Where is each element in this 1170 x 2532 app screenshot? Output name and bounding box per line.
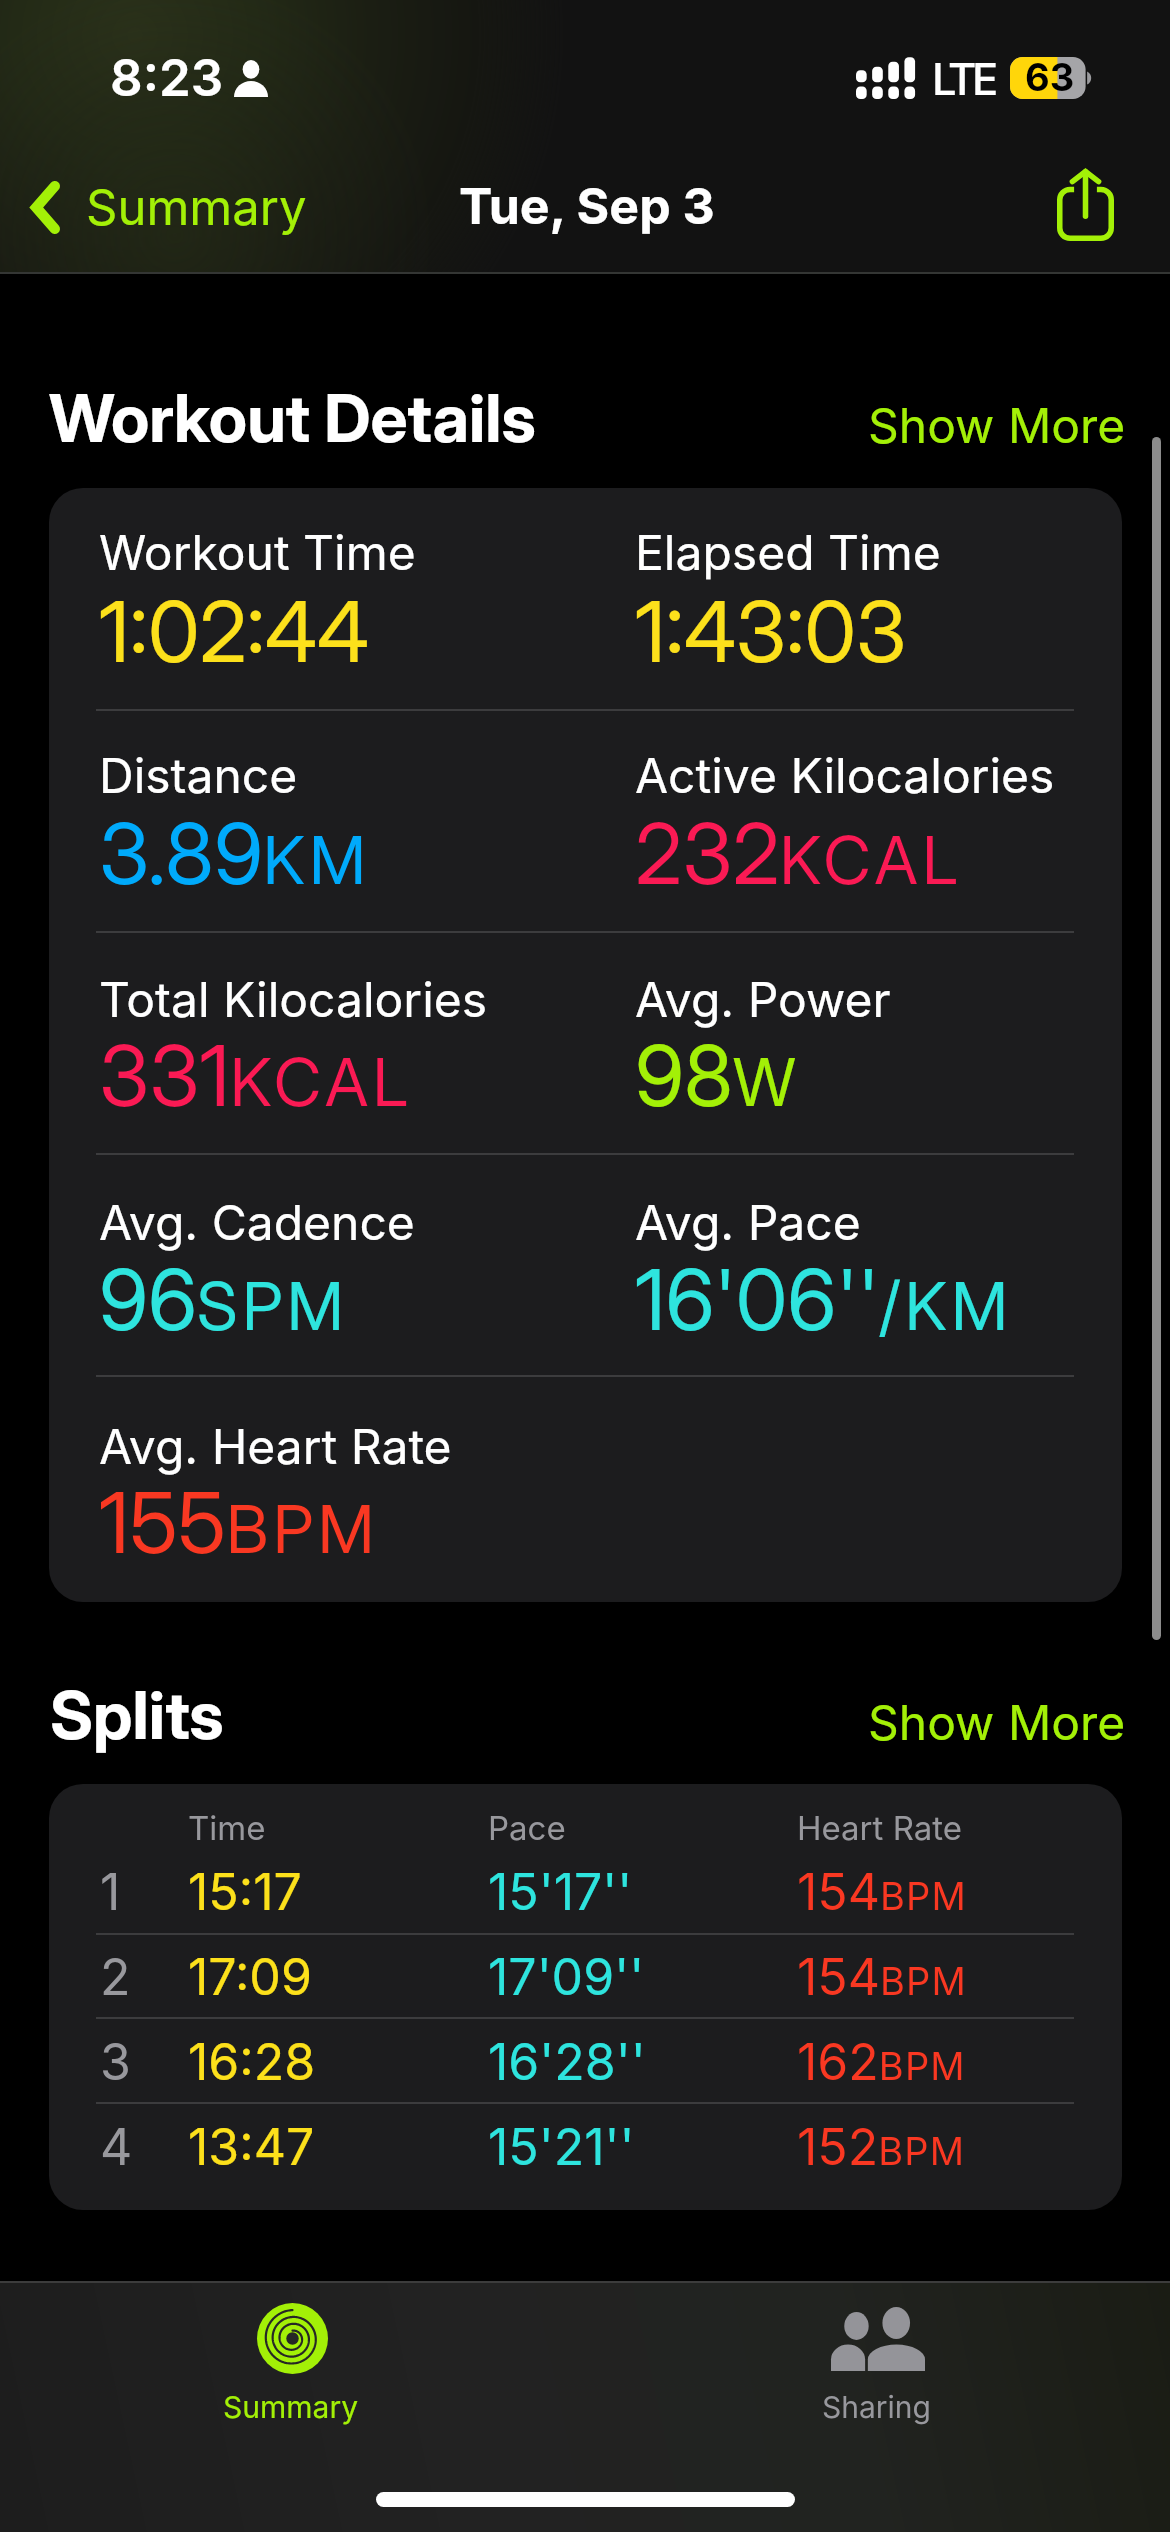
staticText: 17:09 [188,1947,312,2007]
staticText: 15'17'' [488,1862,633,1922]
staticText: 2 [100,1947,131,2007]
staticText: 154BPM [797,1862,968,1922]
staticText: 16'28'' [488,2032,646,2092]
staticText: 232KCAL [635,803,962,905]
staticText: Avg. Heart Rate [99,1417,452,1475]
staticText: Avg. Cadence [99,1193,415,1251]
staticText: 15:17 [188,1862,302,1922]
staticText: 16'06''/KM [635,1249,1013,1351]
staticText: 3 [100,2032,131,2092]
staticText: Workout Time [99,523,416,581]
staticText: Show More [868,1693,1126,1751]
staticText: Avg. Pace [635,1193,861,1251]
staticText: LTE [932,53,994,106]
button[interactable] [49,2019,1122,2104]
staticText: Total Kilocalories [99,970,488,1028]
staticText: 4 [100,2117,133,2177]
staticText: 1:43:03 [635,581,907,683]
staticText: Pace [488,1808,566,1848]
staticText: 155BPM [99,1472,379,1574]
staticText: Elapsed Time [635,523,941,581]
staticText: 17'09'' [488,1947,645,2007]
staticText: 1 [100,1862,121,1922]
staticText: Workout Details [49,378,536,458]
button[interactable]: Summary [10,166,325,249]
button[interactable] [49,1934,1122,2019]
staticText: 152BPM [797,2117,966,2177]
staticText: Time [188,1808,266,1848]
staticText: 154BPM [797,1947,968,2007]
staticText: 15'21'' [488,2117,635,2177]
staticText: 63 [1025,54,1075,96]
staticText: Summary [86,178,307,237]
staticText: Heart Rate [797,1808,962,1848]
staticText: Tue, Sep 3 [459,176,715,236]
staticText: Active Kilocalories [635,746,1055,804]
staticText: Show More [868,396,1126,454]
staticText: Splits [50,1675,224,1755]
staticText: 16:28 [188,2032,316,2092]
staticText: Avg. Power [635,970,891,1028]
button[interactable] [0,2281,585,2449]
button[interactable]: Show More [848,1673,1146,1771]
staticText: 162BPM [797,2032,966,2092]
button[interactable] [49,1849,1122,1934]
button[interactable] [585,2281,1170,2449]
button[interactable]: Show More [848,376,1146,474]
staticText: Sharing [822,2389,931,2425]
staticText: Summary [223,2389,359,2425]
staticText: 331KCAL [99,1025,413,1127]
button[interactable] [49,2104,1122,2189]
button[interactable]: Share [1037,149,1134,261]
staticText: 8:23 [110,47,224,109]
staticText: 13:47 [188,2117,315,2177]
staticText: 96SPM [99,1249,349,1351]
staticText: 3.89KM [99,803,371,905]
staticText: 98W [635,1025,801,1127]
staticText: 1:02:44 [99,581,369,683]
staticText: Distance [99,746,298,804]
